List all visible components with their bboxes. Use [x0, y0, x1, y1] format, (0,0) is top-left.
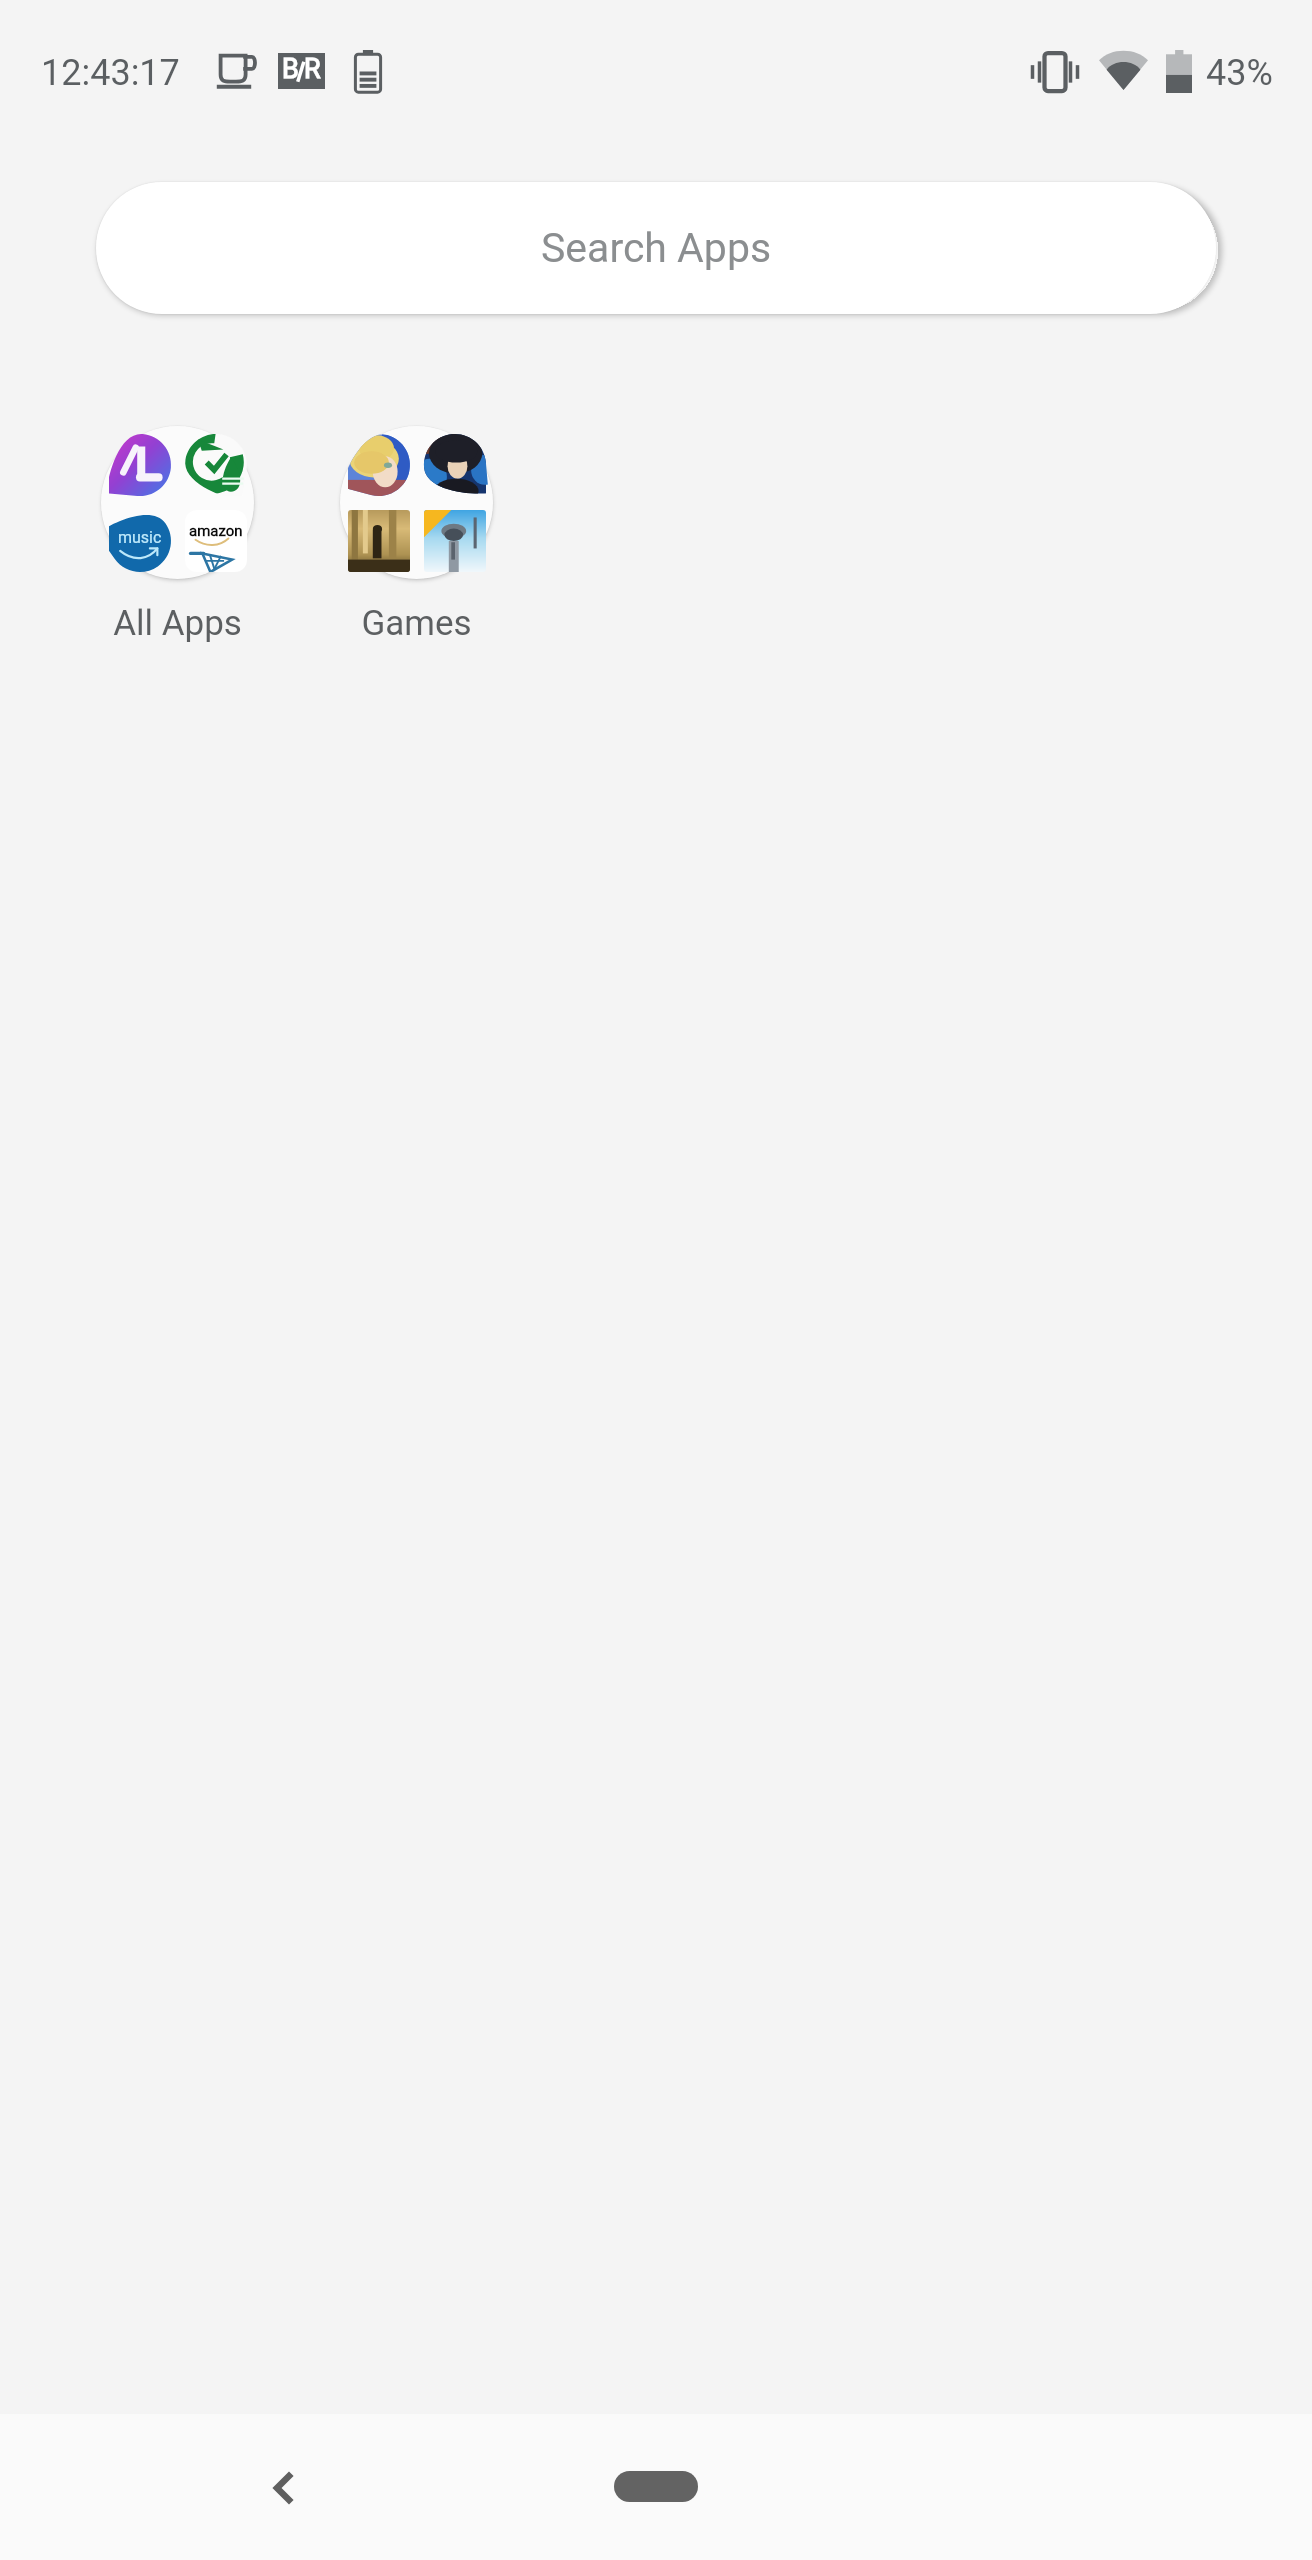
staticText: amazon — [189, 522, 243, 540]
button[interactable]: Back — [209, 2415, 354, 2560]
button[interactable]: Search Apps — [96, 182, 1216, 314]
staticText: Games — [361, 603, 472, 644]
button[interactable]: Home — [583, 2415, 728, 2560]
staticText: 43% — [1206, 52, 1273, 94]
button[interactable]: Games — [296, 426, 536, 644]
staticText: Search Apps — [541, 224, 772, 272]
staticText: R — [304, 53, 321, 85]
button[interactable]: music — [57, 426, 297, 644]
staticText: 12:43:17 — [41, 52, 180, 94]
staticText: music — [118, 528, 162, 547]
staticText: B — [282, 53, 299, 85]
staticText: All Apps — [113, 603, 242, 644]
